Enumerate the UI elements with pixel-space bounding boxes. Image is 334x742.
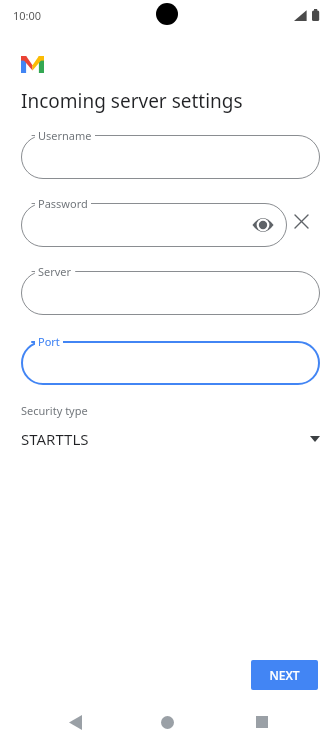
button[interactable]: NEXT [251, 660, 318, 690]
button[interactable] [21, 135, 320, 179]
staticText: Security type [21, 403, 88, 418]
button[interactable]: Home [153, 708, 181, 736]
staticText: Port [38, 334, 60, 349]
staticText: Password [38, 196, 88, 211]
staticText: Username [38, 128, 92, 143]
staticText: Server [38, 264, 72, 279]
staticText: 10:00 [13, 8, 42, 23]
staticText: Incoming server settings [21, 88, 243, 114]
button[interactable]: Back [61, 708, 89, 736]
staticText: NEXT [269, 667, 300, 683]
button[interactable]: Show password [21, 203, 287, 247]
button[interactable]: Recent apps [248, 708, 276, 736]
button[interactable]: Show password [251, 213, 275, 237]
button[interactable]: Clear password [287, 207, 315, 235]
button[interactable] [21, 341, 320, 385]
staticText: STARTTLS [21, 429, 310, 449]
button[interactable]: STARTTLS [21, 429, 320, 449]
button[interactable] [21, 271, 320, 315]
